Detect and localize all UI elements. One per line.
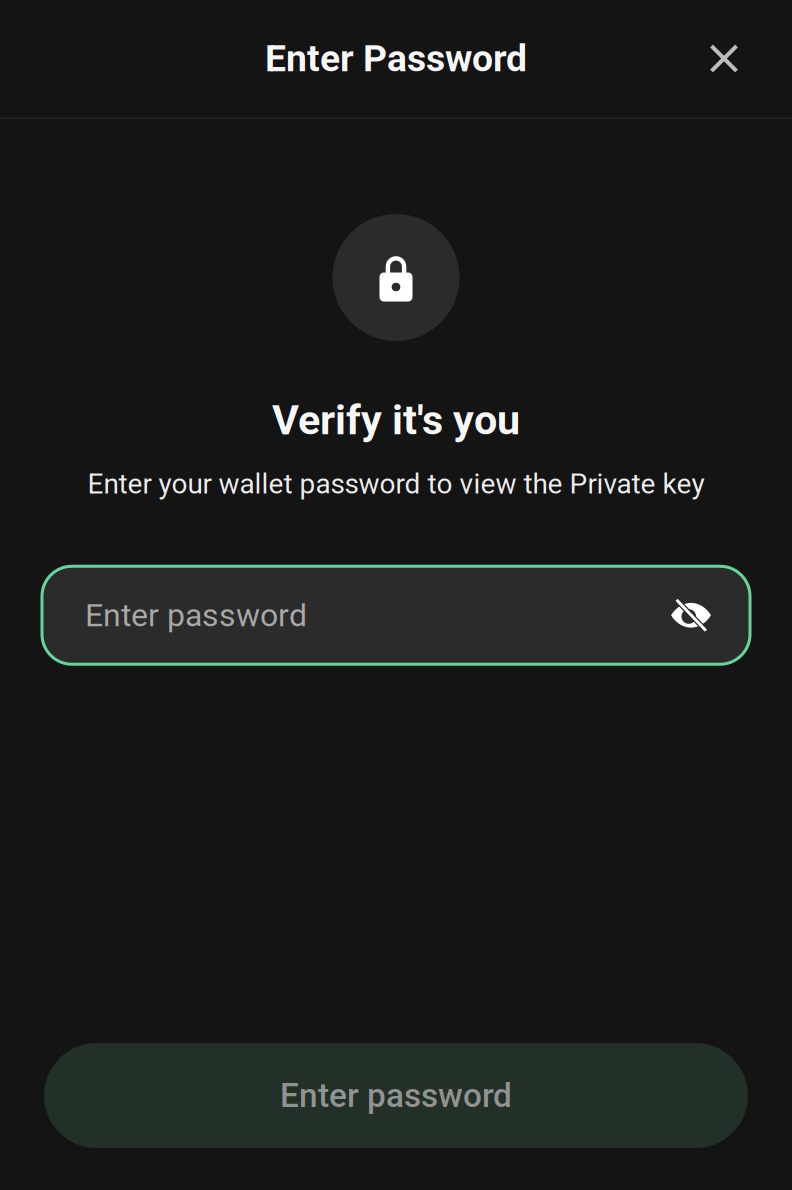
staticText: Enter your wallet password to view the P…: [87, 467, 704, 500]
button[interactable]: Close: [692, 26, 756, 90]
button[interactable]: Show password: [663, 587, 719, 643]
staticText: Enter Password: [265, 37, 527, 80]
button[interactable]: Enter password: [44, 1043, 748, 1148]
button[interactable]: Enter password: [42, 566, 750, 664]
staticText: Enter password: [85, 596, 307, 634]
staticText: Enter password: [280, 1076, 512, 1115]
staticText: Verify it's you: [272, 396, 520, 444]
